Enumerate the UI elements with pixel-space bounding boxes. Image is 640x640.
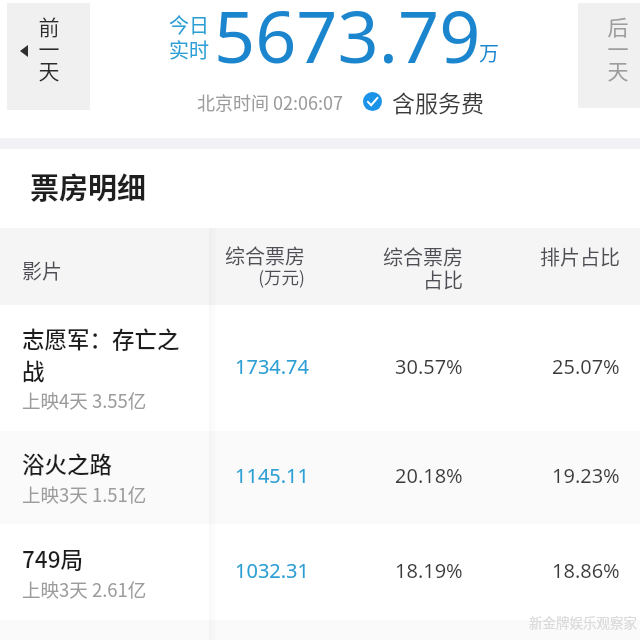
staticText: 北京时间 02:06:07 <box>197 89 343 115</box>
staticText: 排片占比 <box>540 242 620 271</box>
staticText: 上映4天 3.55亿 <box>22 387 147 414</box>
staticText: 浴火之路 <box>22 447 113 480</box>
staticText: 前 一 天 <box>37 11 61 85</box>
staticText: 1734.74 <box>235 353 309 380</box>
staticText: 影片 <box>22 256 62 285</box>
staticText: 5673.79 <box>214 0 481 84</box>
button[interactable]: 志愿军：存亡之战 <box>0 305 640 431</box>
staticText: 19.23% <box>552 462 620 489</box>
staticText: 749局 <box>22 542 83 575</box>
staticText: 综合票房 占比 <box>383 242 463 293</box>
staticText: 上映3天 2.61亿 <box>22 576 147 603</box>
button[interactable]: 后一天 <box>578 3 640 108</box>
button[interactable]: 浴火之路 <box>0 431 640 524</box>
staticText: 志愿军：存亡之战 <box>22 322 190 386</box>
staticText: (万元) <box>258 264 305 289</box>
staticText: 含服务费 <box>392 85 484 118</box>
staticText: 后 一 天 <box>606 11 630 85</box>
staticText: 1032.31 <box>235 557 309 584</box>
staticText: 新金牌娱乐观察家 <box>529 612 637 632</box>
staticText: 万 <box>479 38 499 67</box>
button[interactable]: 前一天 <box>7 3 90 110</box>
button[interactable]: 749局 <box>0 524 640 620</box>
staticText: 30.57% <box>395 353 463 380</box>
staticText: 上映3天 1.51亿 <box>22 481 147 508</box>
staticText: 1145.11 <box>235 462 309 489</box>
staticText: 综合票房 <box>225 241 305 270</box>
staticText: 20.18% <box>395 462 463 489</box>
staticText: 18.19% <box>395 557 463 584</box>
staticText: 今日 实时 <box>169 10 209 64</box>
staticText: 票房明细 <box>30 165 147 207</box>
staticText: 18.86% <box>552 557 620 584</box>
staticText: 25.07% <box>552 353 620 380</box>
